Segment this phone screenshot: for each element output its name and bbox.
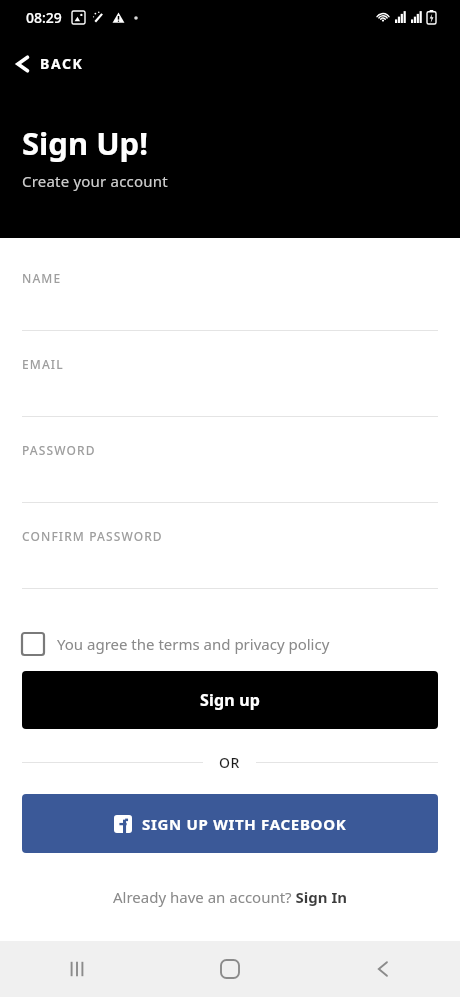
button[interactable]: SIGN UP WITH FACEBOOK (22, 794, 438, 853)
staticText: Sign Up! (22, 122, 148, 164)
button[interactable]: Home (200, 941, 260, 997)
staticText: OR (219, 753, 240, 772)
button[interactable]: Sign up (22, 671, 438, 729)
staticText: Create your account (22, 171, 168, 191)
button[interactable]: Back (353, 941, 413, 997)
staticText: BACK (40, 54, 84, 73)
button[interactable]: Recent apps (47, 941, 107, 997)
button[interactable]: You agree the terms and privacy policy (22, 629, 330, 659)
staticText: You agree the terms and privacy policy (57, 634, 330, 654)
button[interactable]: Already have an account? Sign In (109, 883, 351, 911)
staticText: Sign up (200, 689, 261, 711)
staticText: PASSWORD (22, 442, 96, 458)
staticText: SIGN UP WITH FACEBOOK (142, 814, 347, 834)
staticText: NAME (22, 270, 62, 286)
button[interactable]: BACK (10, 48, 90, 79)
staticText: CONFIRM PASSWORD (22, 528, 163, 544)
staticText: 08:29 (26, 8, 62, 27)
staticText: EMAIL (22, 356, 64, 372)
